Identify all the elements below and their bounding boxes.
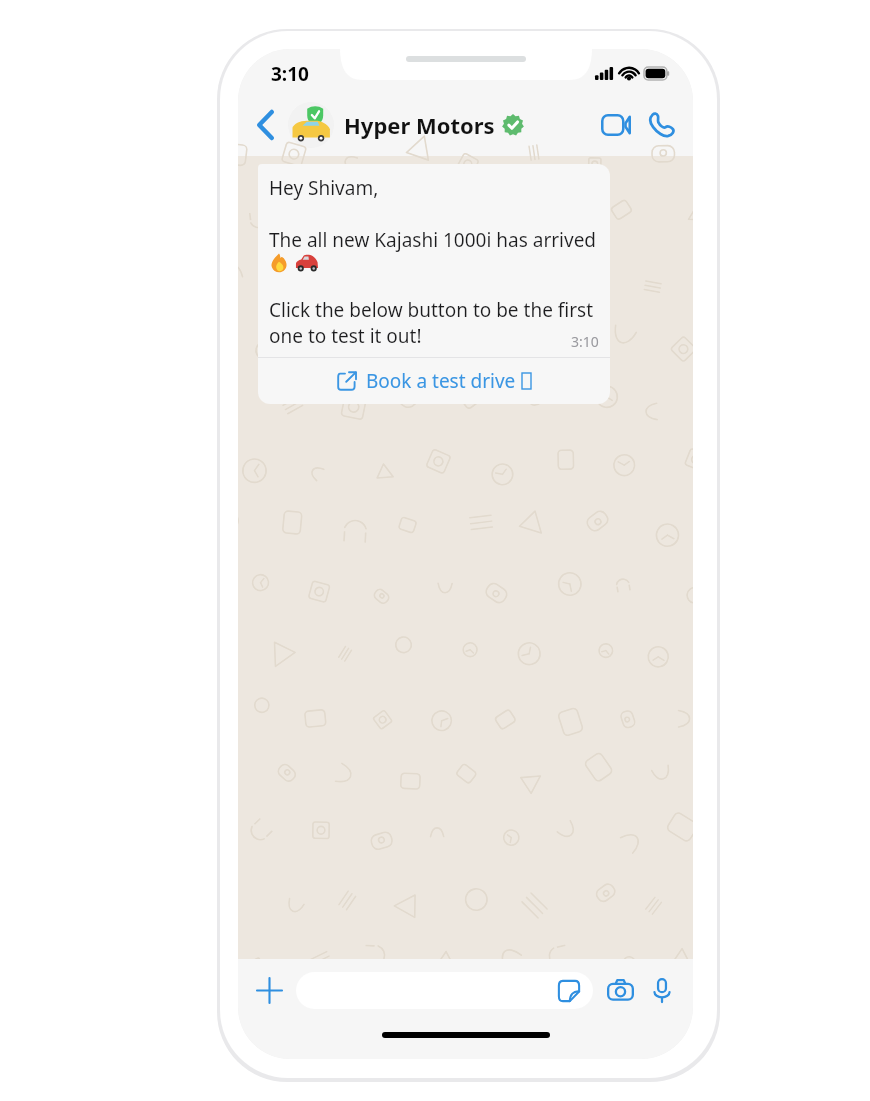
button[interactable]: Video call <box>593 102 639 148</box>
button[interactable]: Hyper Motors profile <box>288 102 334 148</box>
staticText: 3:10 <box>271 61 309 87</box>
staticText: The all new Kajashi 1000i has arrived <box>269 227 597 253</box>
button[interactable]: Stickers <box>296 972 593 1009</box>
button[interactable]: Attach <box>248 969 290 1011</box>
button[interactable]: Back <box>244 104 286 146</box>
button[interactable]: Voice message <box>641 969 683 1011</box>
staticText: Book a test drive <box>366 368 516 394</box>
staticText: one to test it out! <box>269 323 422 349</box>
button[interactable]: Stickers <box>555 977 583 1005</box>
button[interactable]: Book a test drive <box>258 358 610 404</box>
staticText: 3:10 <box>571 332 599 351</box>
button[interactable]: Hey Shivam, <box>258 164 610 404</box>
button[interactable]: Hyper Motors <box>344 110 495 140</box>
button[interactable]: Voice call <box>639 102 685 148</box>
staticText: Click the below button to be the first <box>269 297 594 323</box>
staticText: Hey Shivam, <box>269 175 379 201</box>
button[interactable]: Camera <box>599 969 641 1011</box>
